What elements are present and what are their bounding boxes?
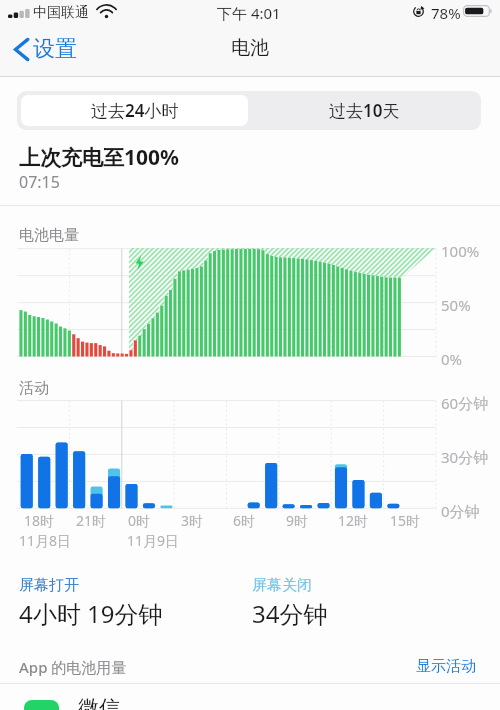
staticText: 下午 4:01 [217, 3, 281, 23]
staticText: 3时 [181, 511, 204, 530]
button[interactable]: 过去24小时 [21, 95, 248, 126]
staticText: App 的电池用量 [19, 657, 127, 677]
staticText: 屏幕打开 [19, 576, 79, 595]
staticText: 显示活动 [416, 657, 476, 676]
staticText: 过去10天 [329, 99, 400, 122]
staticText: 过去24小时 [91, 99, 179, 122]
staticText: 0时 [128, 511, 151, 530]
staticText: 11月8日 [19, 531, 72, 550]
staticText: 34分钟 [252, 597, 328, 630]
staticText: 07:15 [19, 171, 60, 193]
staticText: 活动 [19, 379, 49, 398]
staticText: 电池电量 [19, 226, 79, 245]
staticText: 中国联通 [33, 4, 89, 22]
button[interactable]: 设置 [0, 32, 85, 66]
staticText: 上次充电至100% [19, 143, 179, 172]
staticText: 6时 [233, 511, 256, 530]
button[interactable]: 过去10天 [251, 95, 478, 126]
staticText: 电池 [231, 36, 269, 60]
staticText: 微信 [78, 695, 120, 710]
staticText: 60分钟 [441, 393, 489, 413]
staticText: 100% [441, 241, 480, 261]
button[interactable]: 微信 [0, 684, 500, 710]
staticText: 18时 [24, 511, 55, 530]
staticText: 0分钟 [441, 501, 480, 521]
staticText: 12时 [338, 511, 369, 530]
staticText: 78% [431, 3, 461, 23]
staticText: 9时 [286, 511, 309, 530]
staticText: 11月9日 [127, 531, 180, 550]
staticText: 0% [441, 349, 463, 369]
staticText: 21时 [76, 511, 107, 530]
staticText: 4小时 19分钟 [19, 597, 163, 630]
staticText: 15时 [390, 511, 421, 530]
staticText: 50% [441, 295, 471, 315]
staticText: 设置 [33, 35, 77, 63]
staticText: 屏幕关闭 [252, 576, 312, 595]
button[interactable]: 显示活动 [406, 650, 486, 683]
staticText: 30分钟 [441, 447, 489, 467]
